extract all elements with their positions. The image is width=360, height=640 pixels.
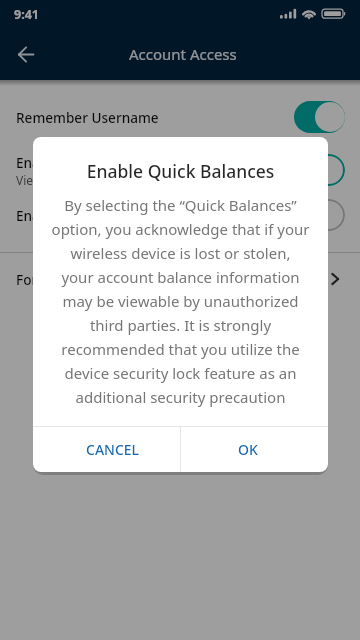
button[interactable]: CANCEL xyxy=(33,427,180,472)
staticText: Enable Biometrics xyxy=(16,206,133,225)
button[interactable]: Enable Quick Balances xyxy=(0,142,360,198)
button[interactable]: OK xyxy=(181,427,328,472)
staticText: By selecting the “Quick Balances” option… xyxy=(33,195,328,407)
staticText: OK xyxy=(238,440,258,459)
button[interactable]: Back xyxy=(2,30,50,78)
staticText: CANCEL xyxy=(86,440,140,459)
staticText: Enable Quick Balances xyxy=(33,159,328,183)
button[interactable]: Forgot Password xyxy=(0,251,360,307)
staticText: Remember Username xyxy=(16,108,159,127)
staticText: 9:41 xyxy=(14,6,39,23)
button[interactable]: Enable Biometrics xyxy=(0,187,360,243)
button[interactable]: Remember Username xyxy=(0,89,360,145)
staticText: View balances without signing in xyxy=(16,172,200,188)
staticText: Enable Quick Balances xyxy=(16,153,162,172)
staticText: Forgot Password xyxy=(16,270,126,289)
staticText: Account Access xyxy=(129,44,237,64)
